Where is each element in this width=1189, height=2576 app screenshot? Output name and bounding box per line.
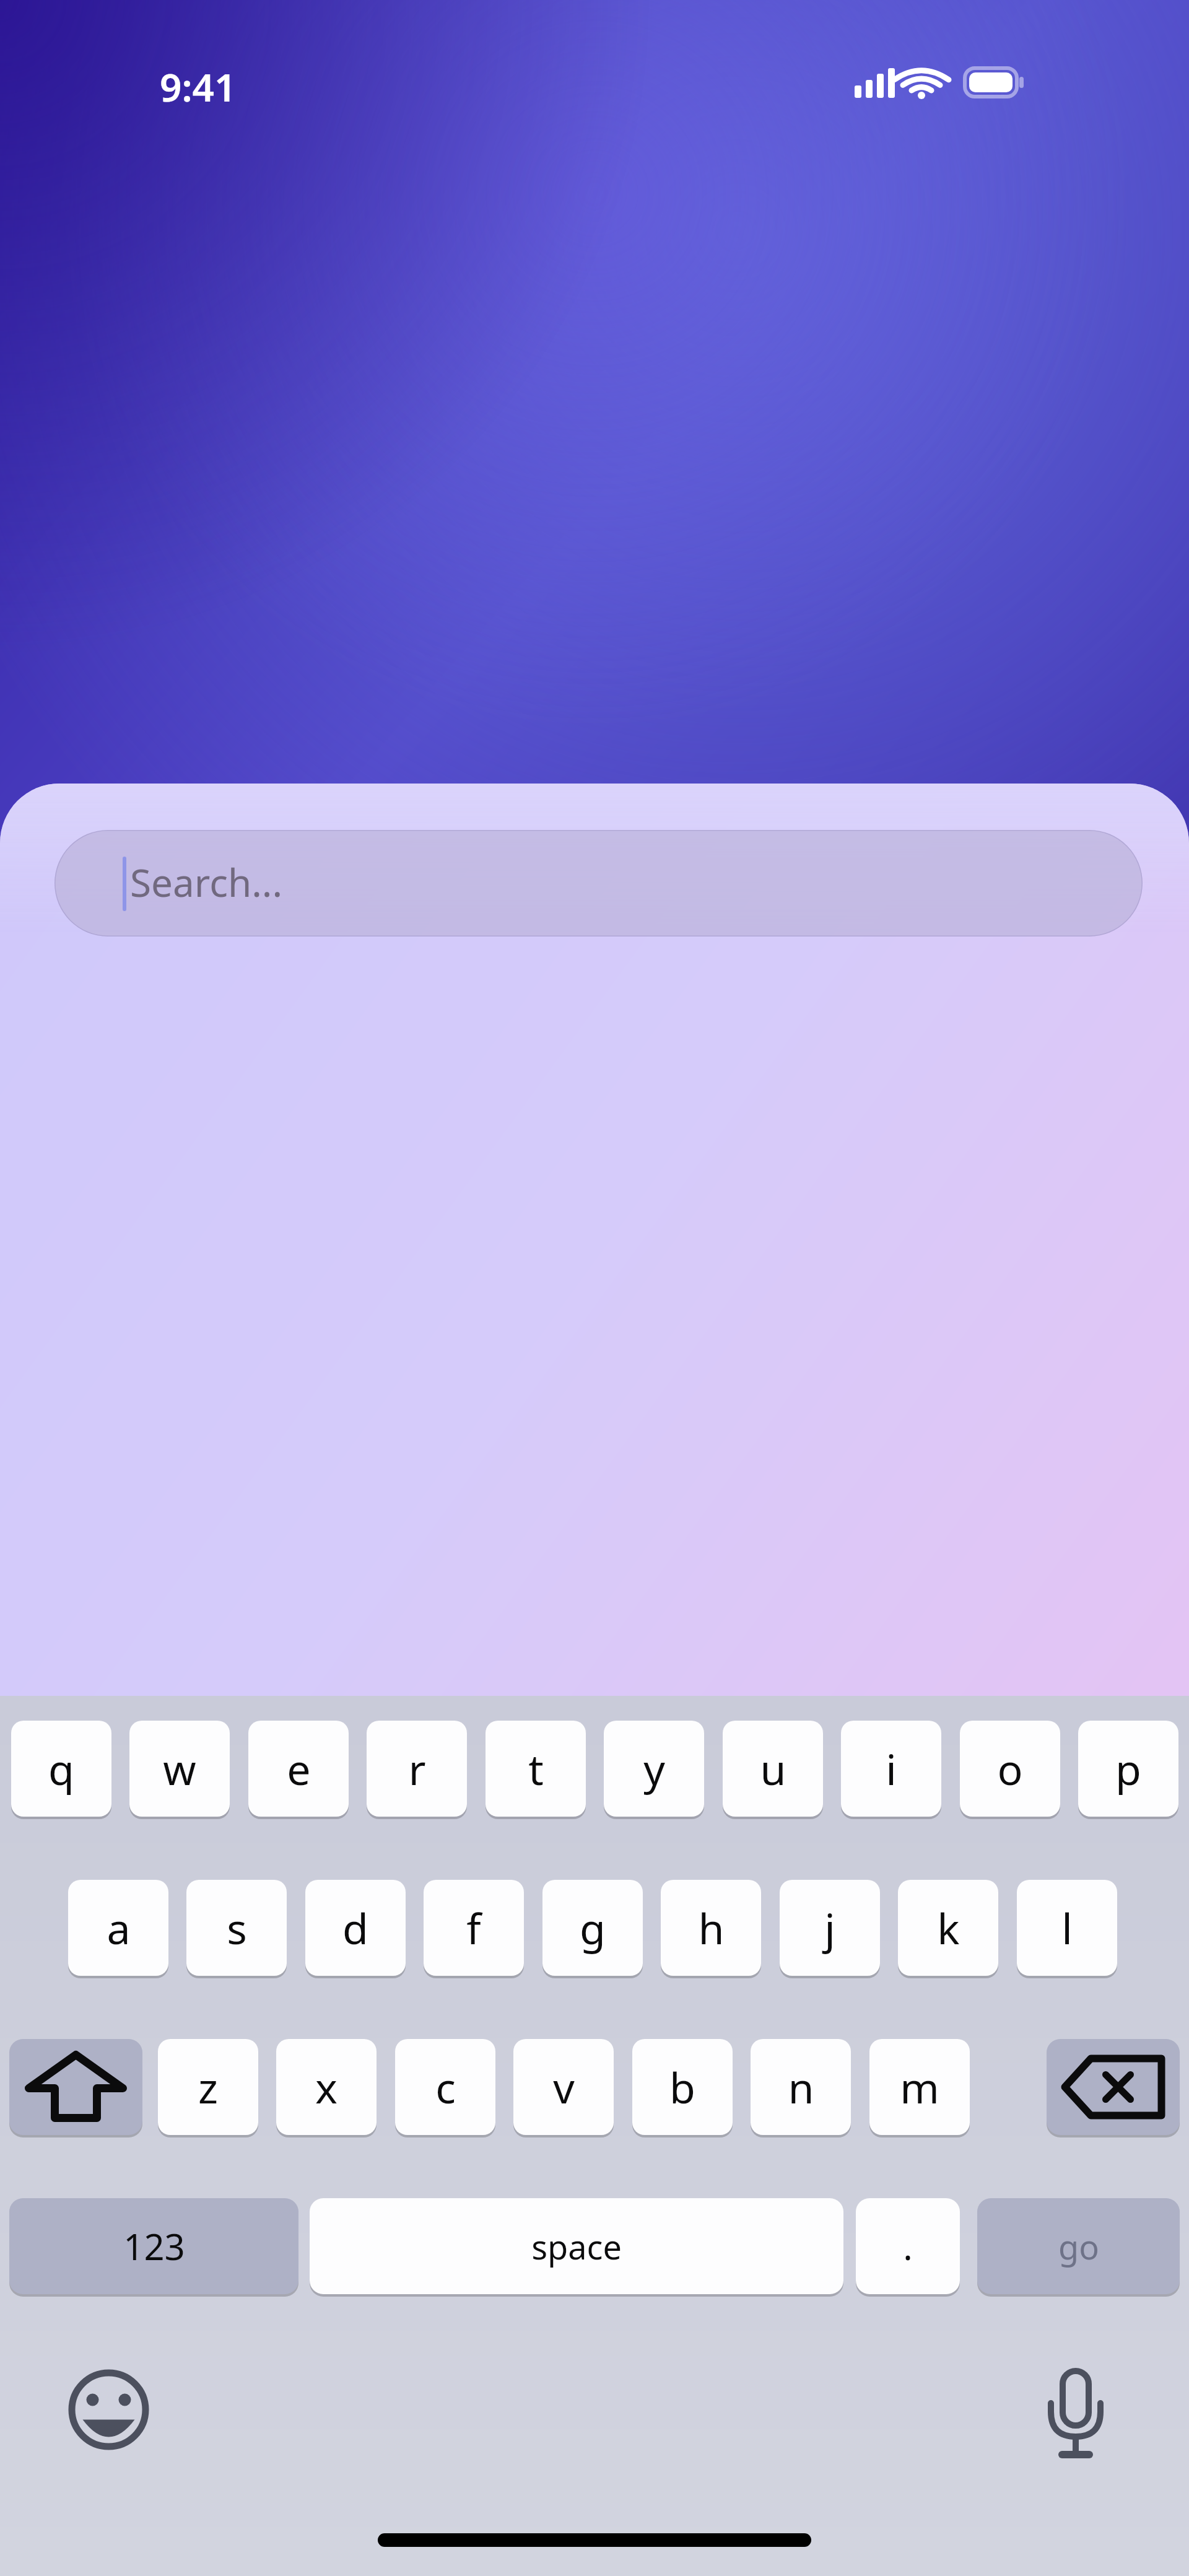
button[interactable]: w [129, 1721, 230, 1817]
button[interactable]: f [424, 1880, 524, 1976]
button[interactable]: i [841, 1721, 941, 1817]
button[interactable]: p [1078, 1721, 1178, 1817]
staticText: x [315, 2058, 338, 2116]
button[interactable]: n [751, 2039, 851, 2135]
button[interactable]: Emoji keyboard [67, 2368, 150, 2452]
button[interactable]: d [305, 1880, 406, 1976]
button[interactable]: c [395, 2039, 495, 2135]
button[interactable]: . [856, 2198, 960, 2294]
staticText: h [698, 1899, 725, 1957]
button[interactable]: j [780, 1880, 880, 1976]
staticText: d [342, 1899, 368, 1957]
button[interactable]: l [1017, 1880, 1117, 1976]
button[interactable]: a [68, 1880, 168, 1976]
staticText: w [163, 1740, 196, 1797]
staticText: o [997, 1740, 1023, 1797]
staticText: 123 [123, 2222, 185, 2271]
button[interactable]: go [977, 2198, 1180, 2294]
button[interactable]: g [542, 1880, 643, 1976]
staticText: b [669, 2058, 695, 2116]
staticText: 9:41 [160, 61, 237, 113]
button[interactable]: space [310, 2198, 843, 2294]
button[interactable]: k [898, 1880, 998, 1976]
staticText: z [198, 2058, 218, 2116]
button[interactable]: v [513, 2039, 614, 2135]
button[interactable]: m [869, 2039, 970, 2135]
staticText: f [466, 1899, 481, 1957]
button[interactable]: e [248, 1721, 349, 1817]
button[interactable]: r [367, 1721, 467, 1817]
button[interactable]: y [604, 1721, 704, 1817]
button[interactable]: b [632, 2039, 733, 2135]
staticText: a [107, 1899, 131, 1957]
staticText: c [435, 2058, 456, 2116]
staticText: u [760, 1740, 786, 1797]
staticText: go [1058, 2224, 1099, 2269]
staticText: . [903, 2222, 913, 2271]
button[interactable]: Backspace [1047, 2039, 1180, 2135]
staticText: q [48, 1740, 74, 1797]
button[interactable]: q [11, 1721, 111, 1817]
staticText: space [531, 2224, 622, 2269]
staticText: m [900, 2058, 939, 2116]
button[interactable]: s [186, 1880, 287, 1976]
staticText: l [1061, 1899, 1073, 1957]
staticText: s [227, 1899, 247, 1957]
button[interactable]: Dictation [1035, 2365, 1116, 2445]
button[interactable]: Search... [54, 830, 1143, 937]
staticText: r [408, 1740, 426, 1797]
staticText: i [886, 1740, 897, 1797]
button[interactable]: o [960, 1721, 1060, 1817]
staticText: n [788, 2058, 814, 2116]
button[interactable]: h [661, 1880, 761, 1976]
staticText: j [824, 1899, 835, 1957]
staticText: k [937, 1899, 960, 1957]
staticText: v [553, 2058, 575, 2116]
button[interactable]: t [486, 1721, 586, 1817]
button[interactable]: u [723, 1721, 823, 1817]
staticText: g [580, 1899, 606, 1957]
button[interactable]: x [276, 2039, 377, 2135]
staticText: p [1115, 1740, 1141, 1797]
staticText: t [528, 1740, 544, 1797]
staticText: Search... [130, 856, 283, 908]
button[interactable]: Shift [9, 2039, 142, 2135]
button[interactable]: z [158, 2039, 258, 2135]
staticText: e [287, 1740, 311, 1797]
staticText: y [643, 1740, 665, 1797]
button[interactable]: 123 [9, 2198, 298, 2294]
